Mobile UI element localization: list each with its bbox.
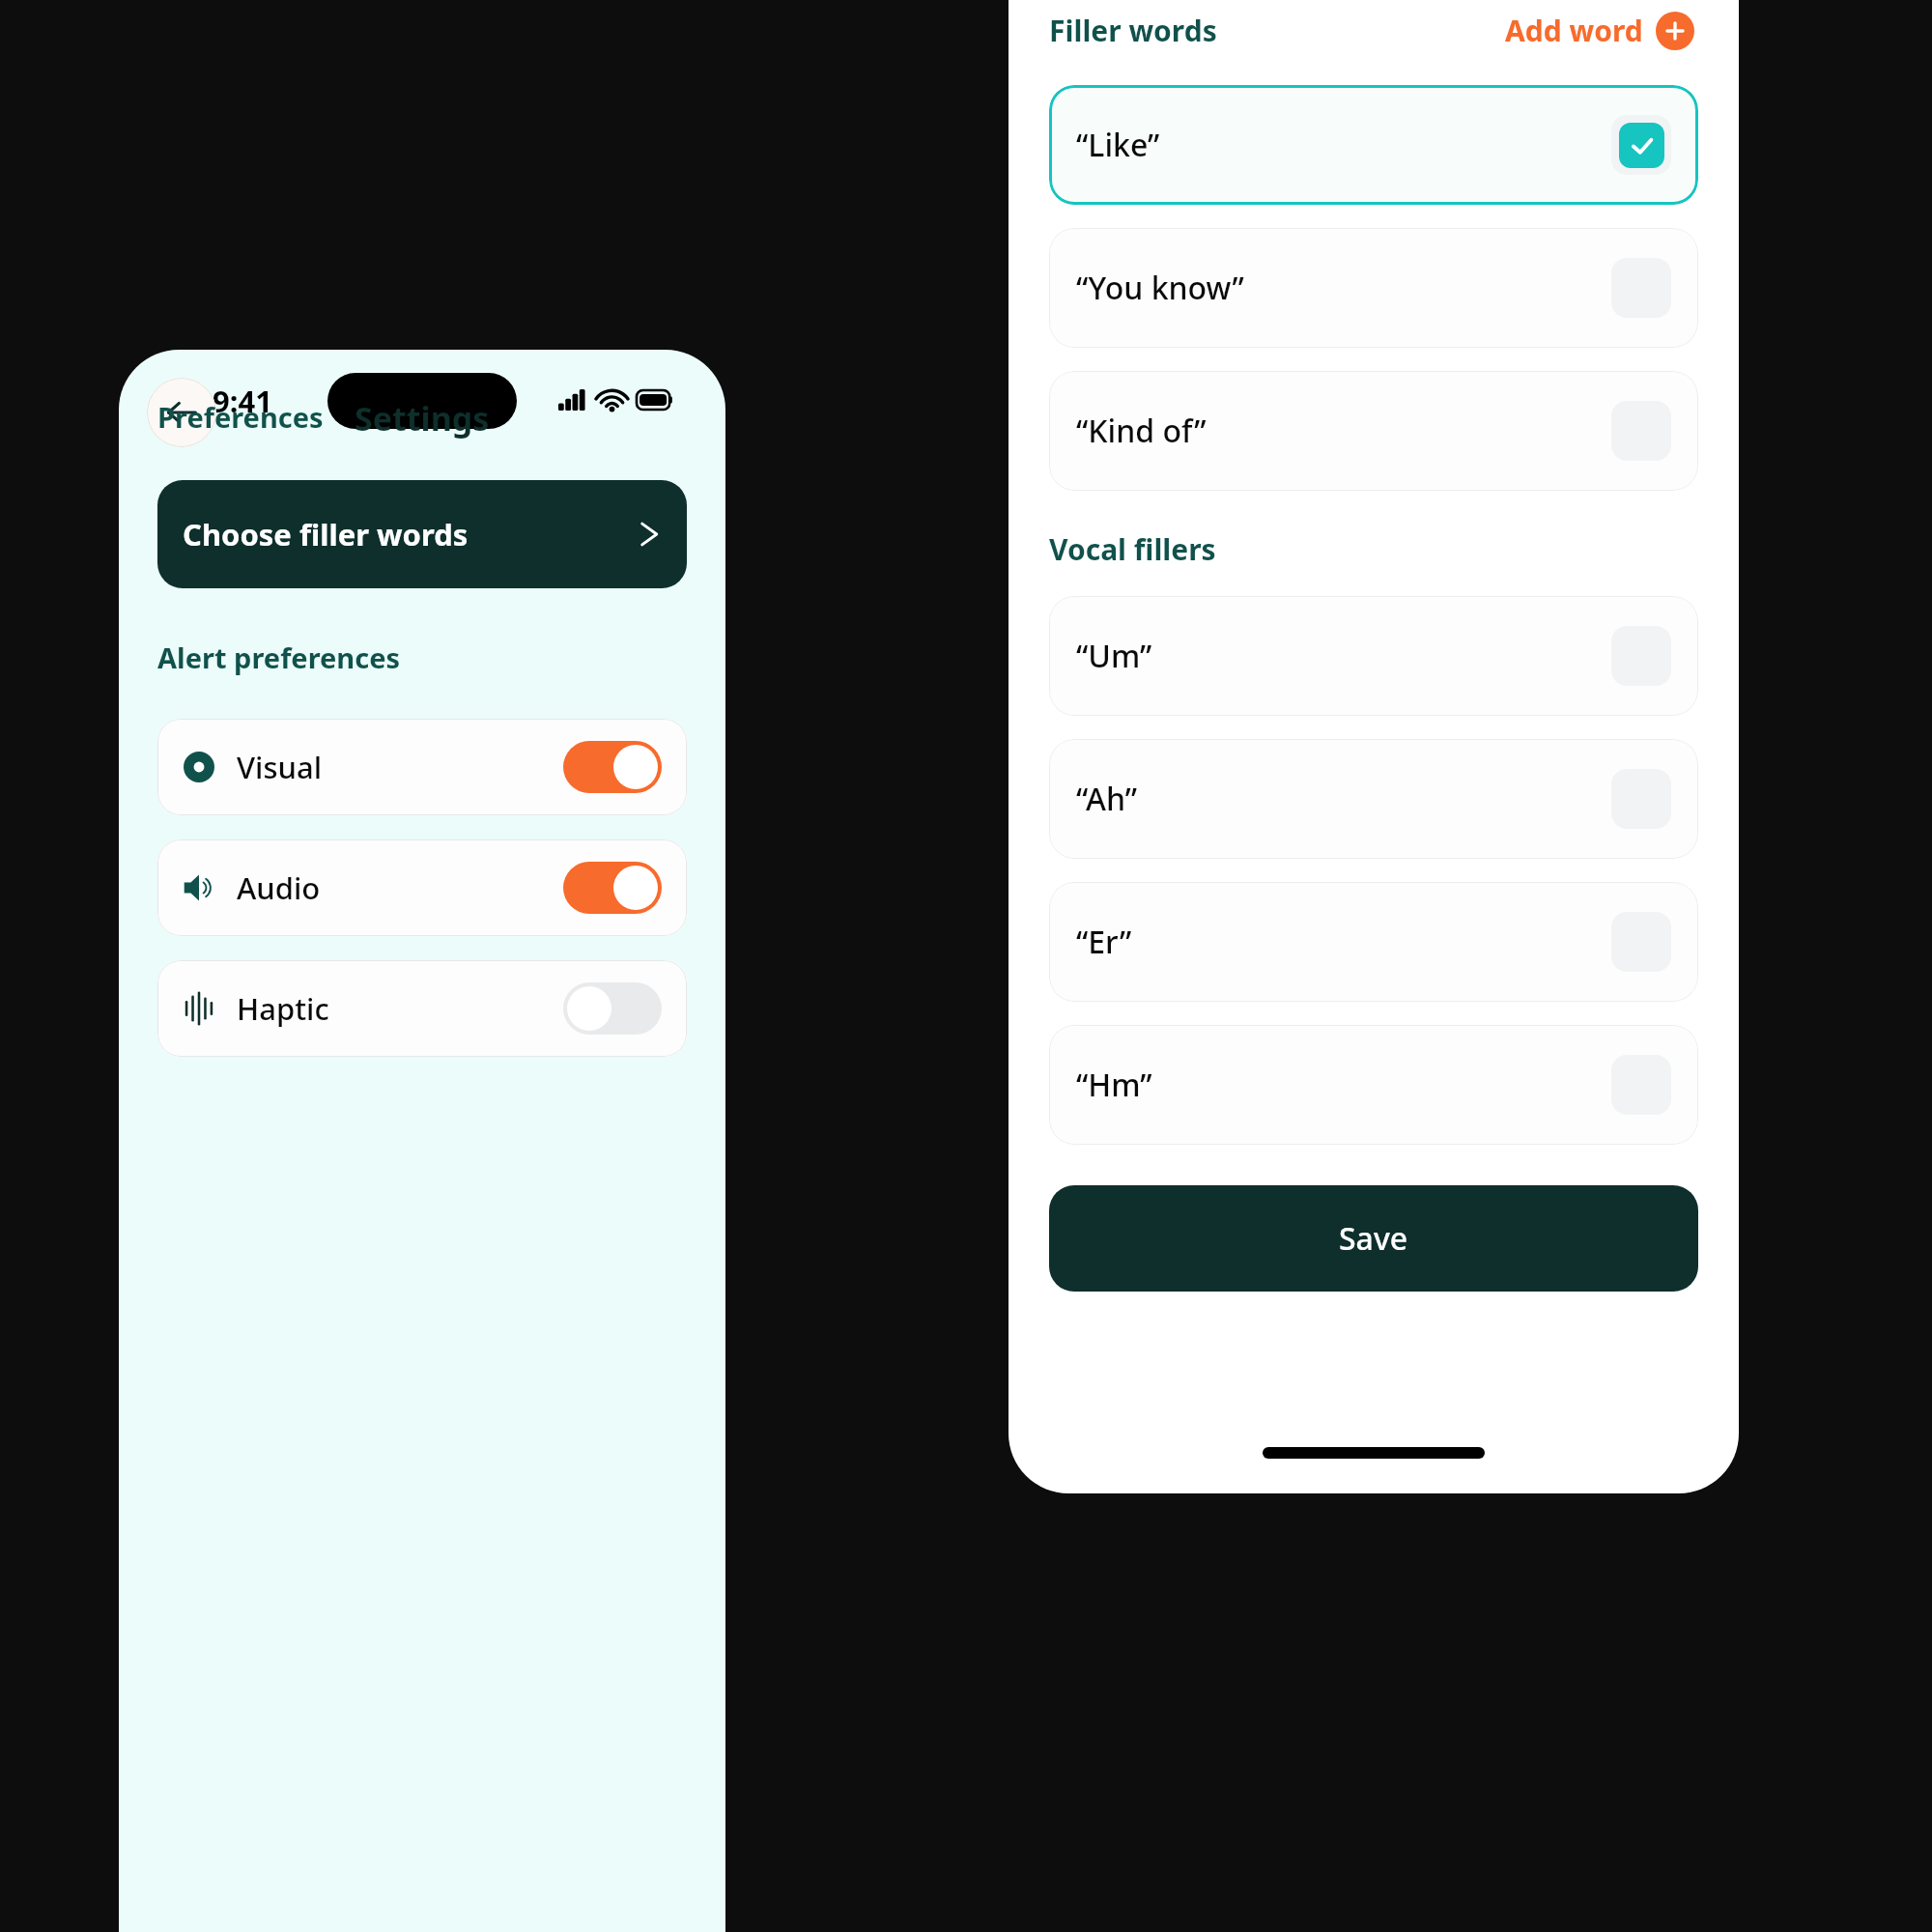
staticText: “Hm” bbox=[1076, 1064, 1611, 1106]
button[interactable]: Haptic bbox=[157, 960, 687, 1057]
staticText: “Like” bbox=[1076, 124, 1611, 166]
button[interactable]: Save bbox=[1049, 1185, 1698, 1292]
staticText: Settings bbox=[355, 396, 490, 440]
button[interactable]: Choose filler words bbox=[157, 480, 687, 588]
staticText: Haptic bbox=[237, 988, 563, 1029]
staticText: Save bbox=[1339, 1217, 1408, 1260]
button[interactable]: Visual bbox=[157, 719, 687, 815]
staticText: 9:41 bbox=[213, 381, 272, 421]
staticText: Alert preferences bbox=[157, 639, 401, 676]
button[interactable]: “Um” bbox=[1049, 596, 1698, 716]
staticText: “Kind of” bbox=[1076, 410, 1611, 452]
button[interactable]: “Ah” bbox=[1049, 739, 1698, 859]
button[interactable]: “Hm” bbox=[1049, 1025, 1698, 1145]
button[interactable]: “Kind of” bbox=[1049, 371, 1698, 491]
button[interactable]: “Er” bbox=[1049, 882, 1698, 1002]
staticText: Choose filler words bbox=[183, 514, 637, 554]
staticText: “Ah” bbox=[1076, 778, 1611, 820]
button[interactable]: Audio bbox=[157, 839, 687, 936]
staticText: Visual bbox=[237, 747, 563, 787]
button[interactable]: Back bbox=[147, 378, 216, 447]
button[interactable]: “Like” bbox=[1049, 85, 1698, 205]
staticText: “Er” bbox=[1076, 921, 1611, 963]
button[interactable]: “You know” bbox=[1049, 228, 1698, 348]
staticText: Vocal fillers bbox=[1049, 529, 1216, 569]
staticText: Filler words bbox=[1049, 11, 1501, 50]
staticText: Preferences bbox=[157, 398, 324, 436]
staticText: Audio bbox=[237, 867, 563, 908]
staticText: Add word bbox=[1505, 11, 1643, 50]
button[interactable]: Add word bbox=[1501, 7, 1698, 54]
staticText: “You know” bbox=[1076, 267, 1611, 309]
staticText: “Um” bbox=[1076, 635, 1611, 677]
